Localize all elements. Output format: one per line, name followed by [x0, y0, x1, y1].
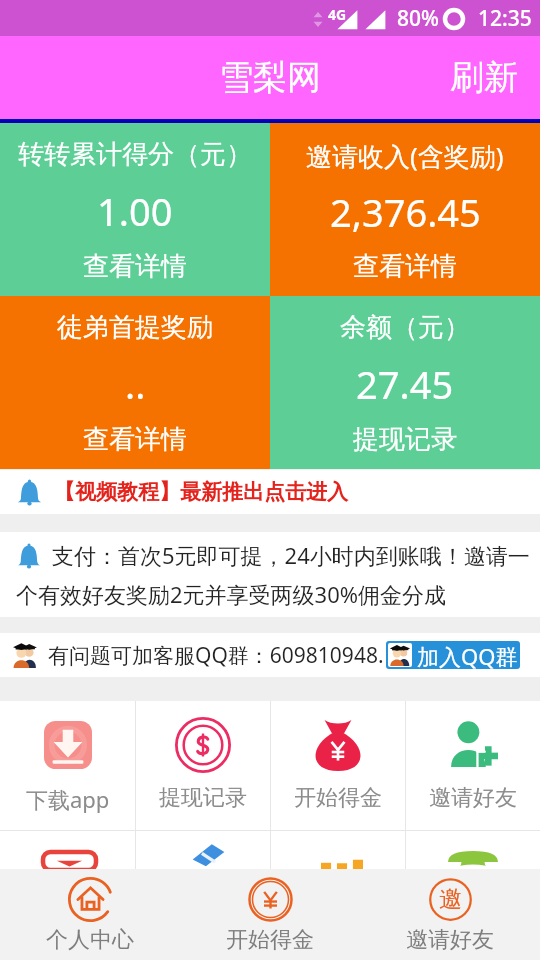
button[interactable]: 邀请收入(含奖励)	[270, 123, 540, 296]
staticText: 开始得金	[294, 784, 382, 812]
staticText: 27.45	[356, 358, 454, 410]
staticText: 邀	[439, 885, 462, 914]
button[interactable]: 转转累计得分（元）	[0, 123, 270, 296]
button[interactable]: 有问题可加客服QQ群：609810948.	[0, 633, 540, 677]
staticText: 查看详情	[353, 250, 457, 283]
staticText: 余额（元）	[340, 311, 470, 344]
button[interactable]: 统计	[271, 831, 405, 869]
staticText: 刷新	[450, 56, 518, 99]
staticText: 开始得金	[226, 926, 314, 954]
staticText: 查看详情	[83, 423, 187, 456]
button[interactable]: 【视频教程】最新推出点击进入	[0, 470, 540, 514]
button[interactable]: 余额（元）	[270, 296, 540, 469]
staticText: 12:35	[478, 4, 532, 33]
button[interactable]: 加入QQ群	[386, 641, 520, 669]
staticText: 转转累计得分（元）	[18, 138, 252, 171]
staticText: 徒弟首提奖励	[57, 311, 213, 344]
staticText: 1.00	[97, 185, 173, 237]
button[interactable]: 开始得金	[180, 869, 360, 960]
staticText: 有问题可加客服QQ群：609810948.	[48, 641, 384, 670]
button[interactable]: 支付：首次5元即可提，24小时内到账哦！邀请一个有效好友奖励2元并享受两级30%…	[0, 532, 540, 617]
staticText: 邀请好友	[429, 784, 517, 812]
staticText: 【视频教程】最新推出点击进入	[54, 479, 348, 505]
staticText: 雪梨网	[219, 56, 321, 99]
staticText: 加入QQ群	[417, 641, 518, 669]
button[interactable]: 下载app	[0, 701, 135, 830]
staticText: 2,376.45	[330, 186, 481, 238]
staticText: 邀请收入(含奖励)	[306, 138, 504, 174]
staticText: 提现记录	[159, 784, 247, 812]
button[interactable]: 个人中心	[0, 869, 180, 960]
staticText: 个人中心	[46, 926, 134, 954]
staticText: 提现记录	[353, 423, 457, 456]
staticText: 80%	[397, 4, 439, 33]
button[interactable]: 红包	[0, 831, 135, 869]
button[interactable]: 邀请好友	[406, 701, 540, 830]
staticText: 邀请好友	[406, 926, 494, 954]
button[interactable]: 清理	[136, 831, 270, 869]
button[interactable]: 提现记录	[136, 701, 270, 830]
staticText: ..	[125, 358, 146, 410]
button[interactable]: 刷新	[428, 36, 540, 119]
button[interactable]: 邀	[360, 869, 540, 960]
staticText: 4G	[328, 5, 347, 24]
button[interactable]: 更多	[406, 831, 540, 869]
staticText: 查看详情	[83, 250, 187, 283]
staticText: 下载app	[26, 784, 110, 814]
button[interactable]: 开始得金	[271, 701, 405, 830]
staticText: 支付：首次5元即可提，24小时内到账哦！邀请一个有效好友奖励2元并享受两级30%…	[16, 540, 532, 609]
button[interactable]: 徒弟首提奖励	[0, 296, 270, 469]
